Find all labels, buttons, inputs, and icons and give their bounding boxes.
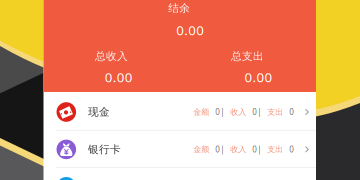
staticText: 金额 [193,144,209,154]
staticText: | [257,107,261,117]
staticText: 收入 [230,144,246,154]
staticText: 收入 [230,107,246,117]
staticText: 0.00 [176,21,204,39]
staticText: | [257,144,261,155]
staticText: 银行卡 [88,143,121,156]
staticText: 0.00 [244,68,272,86]
button[interactable]: 支付宝 [43,168,316,180]
staticText: 0 [252,107,257,117]
staticText: | [220,107,224,117]
staticText: 0 [215,107,220,117]
staticText: 0 [289,107,294,117]
staticText: 结余 [168,2,190,15]
button[interactable]: 银行卡 [43,131,316,168]
staticText: 0 [289,144,294,155]
staticText: 0 [215,144,220,155]
staticText: | [220,144,224,155]
staticText: 总收入 [95,50,128,63]
staticText: 总支出 [231,50,264,63]
staticText: 0.00 [105,68,133,86]
staticText: 金额 [193,107,209,117]
button[interactable]: 现金 [43,93,316,131]
staticText: 支出 [267,107,283,117]
staticText: 现金 [88,105,110,118]
staticText: 支出 [267,144,283,154]
staticText: 0 [252,144,257,155]
